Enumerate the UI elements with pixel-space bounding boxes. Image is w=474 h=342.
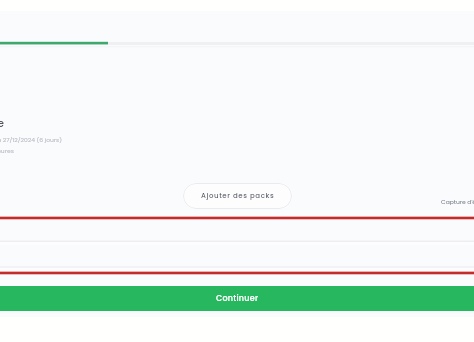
staticText: Ajouter des packs	[201, 191, 275, 201]
button[interactable]: Capture d'écran	[441, 195, 474, 207]
staticText: Durée : 144 heures	[0, 147, 14, 155]
button[interactable]: Mon voyage	[0, 108, 60, 164]
staticText: Mon voyage	[0, 116, 4, 130]
staticText: Continuer	[216, 293, 259, 304]
button[interactable]: Ajouter des packs	[183, 183, 292, 209]
staticText: Du 21/12/2024 au 27/12/2024 (6 jours)	[0, 136, 62, 144]
button[interactable]: Continuer	[0, 286, 474, 311]
staticText: Capture d'écran	[441, 198, 474, 206]
